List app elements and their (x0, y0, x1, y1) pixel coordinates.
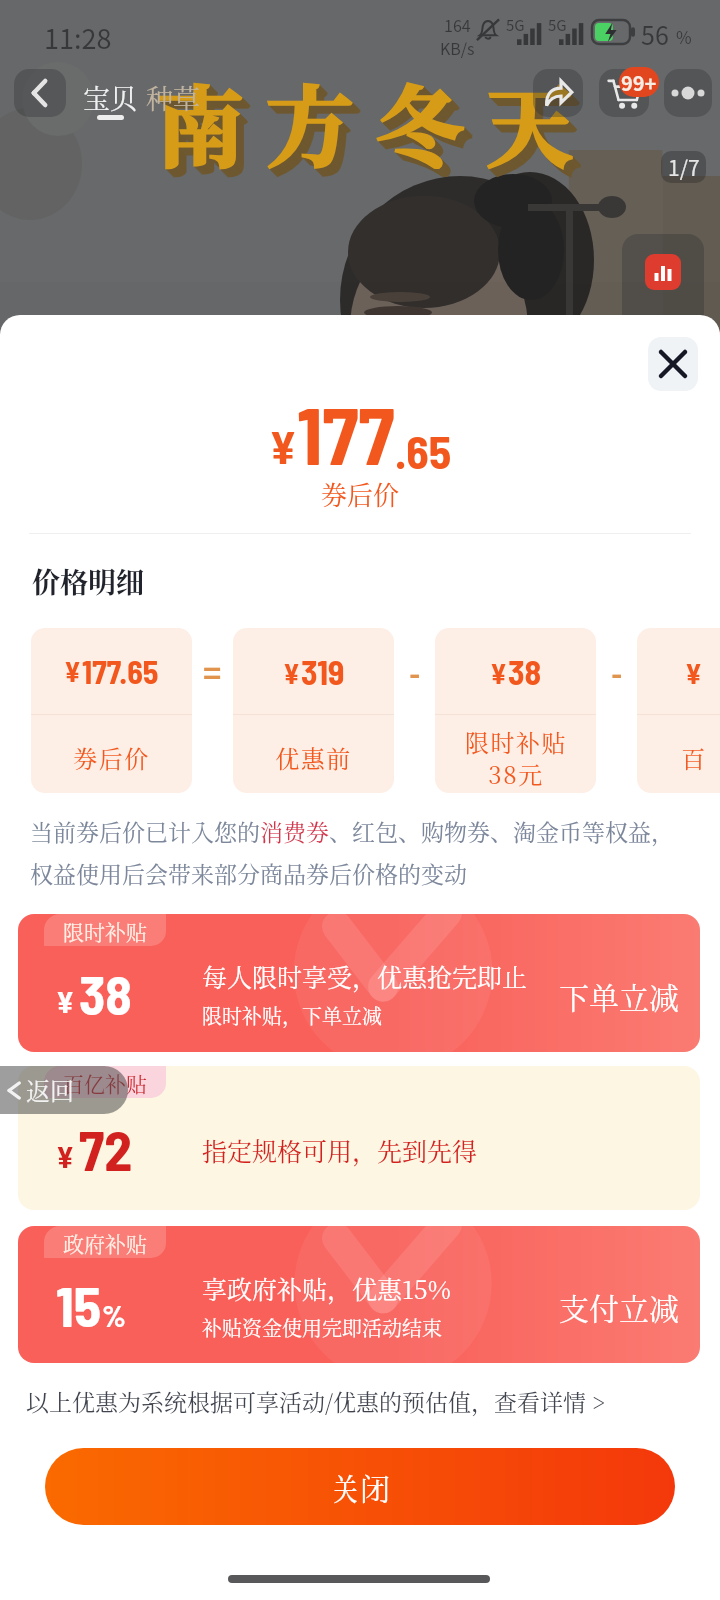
button[interactable] (18, 1226, 700, 1363)
staticText: 164 (444, 13, 471, 36)
staticText: 补贴资金使用完即活动结束 (202, 1313, 442, 1342)
staticText: 南方冬天 (160, 62, 601, 188)
button[interactable]: Ranking (622, 234, 704, 338)
button[interactable]: Back (14, 69, 66, 117)
staticText: 返回 (26, 1072, 74, 1106)
staticText: 177 (297, 385, 395, 481)
staticText: % (676, 24, 692, 49)
staticText: ¥ (56, 1138, 75, 1174)
staticText: 价格明细 (32, 561, 145, 601)
staticText: 限时补贴，下单立减 (202, 1001, 382, 1030)
staticText: % (102, 1297, 126, 1333)
staticText: 南方冬天 (164, 66, 605, 192)
staticText: 南方冬天 (162, 64, 603, 190)
staticText: ¥ (64, 654, 82, 688)
button[interactable]: 宝贝 (81, 70, 139, 123)
staticText: - (611, 649, 623, 694)
staticText: 5G (548, 14, 567, 36)
button[interactable]: More options (664, 69, 712, 117)
button[interactable]: 1/7 (661, 151, 706, 183)
button[interactable] (18, 914, 700, 1052)
staticText: 百亿补贴 (63, 1068, 147, 1098)
staticText: 38 (508, 651, 542, 692)
staticText: 319 (301, 651, 345, 692)
button[interactable]: Shopping cart (599, 69, 649, 117)
staticText: ¥ (490, 656, 508, 690)
staticText: ¥ (685, 656, 703, 690)
button[interactable]: Back (0, 1066, 128, 1114)
staticText: 南方冬天 (163, 65, 604, 191)
button[interactable]: Share (533, 69, 583, 117)
staticText: 权益使用后会带来部分商品券后价格的变动 (30, 857, 467, 890)
staticText: 99+ (621, 68, 657, 97)
staticText: 享政府补贴，优惠15% (202, 1270, 451, 1306)
staticText: 种草 (146, 78, 200, 117)
button[interactable]: 关闭 (45, 1448, 675, 1525)
staticText: 38 (79, 961, 132, 1026)
staticText: 下单立减 (559, 974, 679, 1017)
staticText: 南方冬天 (159, 61, 600, 187)
staticText: 支付立减 (559, 1285, 679, 1328)
staticText: 以上优惠为系统根据可享活动/优惠的预估值，查看详情 > (26, 1385, 606, 1418)
staticText: - (409, 649, 421, 694)
staticText: 关闭 (330, 1465, 390, 1508)
staticText: 南方冬天 (157, 59, 598, 185)
staticText: = (203, 649, 222, 694)
staticText: 南方冬天 (156, 58, 597, 184)
staticText: 1/7 (668, 152, 700, 182)
staticText: 券后价 (73, 740, 150, 774)
staticText: 177.65 (82, 652, 159, 690)
button[interactable] (18, 1066, 700, 1210)
staticText: 每人限时享受，优惠抢完即止 (202, 958, 528, 994)
staticText: 当前券后价已计入您的消费券、红包、购物券、淘金币等权益， (30, 815, 674, 848)
staticText: ¥ (283, 656, 301, 690)
button[interactable]: Close (648, 337, 698, 391)
staticText: 限时补贴 (63, 916, 147, 946)
staticText: 宝贝 (83, 78, 137, 117)
staticText: 指定规格可用，先到先得 (202, 1132, 478, 1168)
staticText: ¥ (269, 418, 297, 473)
staticText: 5G (506, 14, 525, 36)
staticText: 券后价 (0, 475, 720, 512)
button[interactable]: 种草 (142, 70, 204, 114)
staticText: 南方冬天 (161, 63, 602, 189)
staticText: 限时补贴 38元 (465, 724, 567, 791)
staticText: 百 (681, 740, 707, 774)
staticText: 11:28 (44, 18, 112, 57)
staticText: .65 (395, 423, 452, 478)
staticText: 优惠前 (275, 740, 352, 774)
staticText: 15 (56, 1271, 102, 1338)
staticText: KB/s (440, 36, 475, 59)
staticText: 72 (79, 1115, 133, 1182)
staticText: 政府补贴 (63, 1228, 147, 1258)
staticText: 南方冬天 (158, 60, 599, 186)
staticText: ¥ (56, 983, 75, 1019)
staticText: 56 (641, 16, 669, 52)
